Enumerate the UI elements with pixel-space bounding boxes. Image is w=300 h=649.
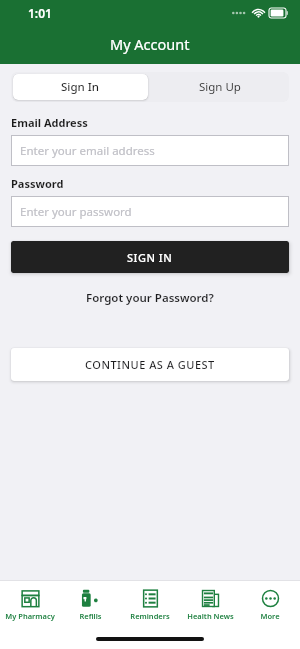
staticText: Email Address — [11, 115, 88, 130]
button[interactable]: Reminders — [120, 581, 180, 629]
staticText: Enter your password — [20, 204, 132, 220]
button[interactable]: Sign In — [13, 74, 148, 100]
staticText: SIGN IN — [127, 250, 173, 265]
button[interactable]: Refills — [60, 581, 120, 629]
button[interactable]: Enter your password — [11, 196, 289, 227]
staticText: Password — [11, 176, 64, 191]
button[interactable]: SIGN IN — [11, 241, 289, 273]
staticText: More — [260, 611, 280, 621]
staticText: Sign In — [61, 79, 100, 95]
staticText: Enter your email address — [20, 143, 155, 159]
button[interactable]: More — [240, 581, 300, 629]
staticText: Refills — [79, 611, 102, 621]
staticText: Reminders — [130, 611, 170, 621]
staticText: CONTINUE AS A GUEST — [85, 357, 215, 372]
staticText: My Pharmacy — [5, 611, 55, 621]
button[interactable]: CONTINUE AS A GUEST — [11, 348, 289, 381]
button[interactable]: Enter your email address — [11, 135, 289, 166]
staticText: My Account — [110, 34, 190, 54]
button[interactable]: Sign Up — [150, 72, 289, 102]
staticText: Health News — [187, 611, 234, 621]
staticText: 1:01 — [28, 5, 52, 21]
button[interactable]: Forgot your Password? — [80, 288, 220, 308]
button[interactable]: My Pharmacy — [0, 581, 60, 629]
staticText: Sign Up — [199, 79, 241, 95]
button[interactable]: Health News — [180, 581, 240, 629]
staticText: Forgot your Password? — [86, 290, 214, 306]
